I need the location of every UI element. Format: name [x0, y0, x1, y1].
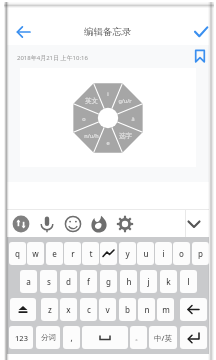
staticText: t: [89, 248, 93, 259]
staticText: j: [147, 276, 150, 287]
staticText: o: [82, 115, 86, 122]
staticText: x: [66, 304, 71, 315]
button[interactable]: Switch: [10, 213, 32, 235]
button[interactable]: a: [20, 270, 37, 293]
button[interactable]: Hide keyboard: [183, 213, 205, 235]
button[interactable]: Back: [11, 19, 37, 45]
staticText: 编辑备忘录: [84, 26, 132, 38]
button[interactable]: k: [160, 270, 177, 293]
staticText: n: [144, 304, 150, 315]
button[interactable]: t: [82, 242, 99, 265]
button[interactable]: b: [119, 298, 136, 321]
button[interactable]: n: [138, 298, 155, 321]
button[interactable]: z: [41, 298, 58, 321]
button[interactable]: Bookmark: [190, 46, 210, 66]
button[interactable]: 123: [9, 326, 33, 349]
button[interactable]: p: [192, 242, 209, 265]
staticText: q: [15, 248, 20, 259]
staticText: e: [106, 139, 110, 146]
button[interactable]: h: [120, 270, 137, 293]
button[interactable]: l: [180, 270, 197, 293]
button[interactable]: j: [140, 270, 157, 293]
button[interactable]: u: [137, 242, 154, 265]
button[interactable]: e: [46, 242, 63, 265]
staticText: e: [52, 248, 57, 259]
button[interactable]: shift: [10, 298, 36, 321]
staticText: v: [105, 304, 110, 315]
staticText: ,: [70, 332, 73, 343]
staticText: f: [87, 276, 90, 287]
staticText: y: [125, 248, 130, 259]
button[interactable]: space: [82, 326, 128, 349]
staticText: 。: [135, 333, 142, 342]
button[interactable]: m: [157, 298, 174, 321]
button[interactable]: c: [80, 298, 97, 321]
button[interactable]: wave: [100, 242, 117, 265]
button[interactable]: bs: [180, 298, 207, 321]
button[interactable]: o: [173, 242, 190, 265]
staticText: u: [143, 248, 149, 259]
button[interactable]: f: [80, 270, 97, 293]
staticText: 英文: [85, 97, 98, 105]
button[interactable]: g: [100, 270, 117, 293]
button[interactable]: y: [119, 242, 136, 265]
staticText: a: [26, 276, 31, 287]
button[interactable]: enter: [180, 326, 207, 349]
button[interactable]: v: [99, 298, 116, 321]
staticText: 中/英: [154, 333, 172, 343]
button[interactable]: Settings: [114, 213, 136, 235]
button[interactable]: 。: [130, 326, 147, 349]
button[interactable]: ,: [63, 326, 80, 349]
button[interactable]: r: [64, 242, 81, 265]
button[interactable]: s: [40, 270, 57, 293]
staticText: o: [179, 248, 184, 259]
staticText: 分词: [41, 333, 56, 342]
staticText: d: [66, 276, 71, 287]
staticText: c: [87, 304, 91, 315]
staticText: m: [162, 304, 170, 315]
staticText: i: [107, 90, 109, 97]
staticText: b: [125, 304, 130, 315]
staticText: g/u/r: [118, 97, 132, 104]
staticText: p: [198, 248, 203, 259]
button[interactable]: Save: [188, 19, 214, 45]
staticText: z: [48, 304, 52, 315]
staticText: 2018年4月21日 上午10:16: [17, 54, 88, 62]
staticText: k: [166, 276, 171, 287]
staticText: n/u/h: [84, 132, 99, 139]
staticText: 选字: [119, 132, 132, 140]
staticText: w: [32, 248, 39, 259]
staticText: i: [162, 248, 165, 259]
staticText: r: [71, 248, 75, 259]
button[interactable]: i: [155, 242, 172, 265]
button[interactable]: x: [60, 298, 77, 321]
button[interactable]: Hot: [88, 213, 110, 235]
staticText: g: [106, 276, 111, 287]
button[interactable]: 中/英: [149, 326, 177, 349]
staticText: h: [126, 276, 132, 287]
button[interactable]: w: [27, 242, 44, 265]
button[interactable]: d: [60, 270, 77, 293]
button[interactable]: 分词: [36, 326, 60, 349]
staticText: s: [47, 276, 51, 287]
button[interactable]: Emoji: [62, 213, 84, 235]
button[interactable]: Voice input: [36, 213, 58, 235]
button[interactable]: q: [9, 242, 26, 265]
staticText: l: [187, 276, 190, 287]
staticText: ä: [131, 115, 135, 122]
staticText: 123: [15, 333, 28, 343]
